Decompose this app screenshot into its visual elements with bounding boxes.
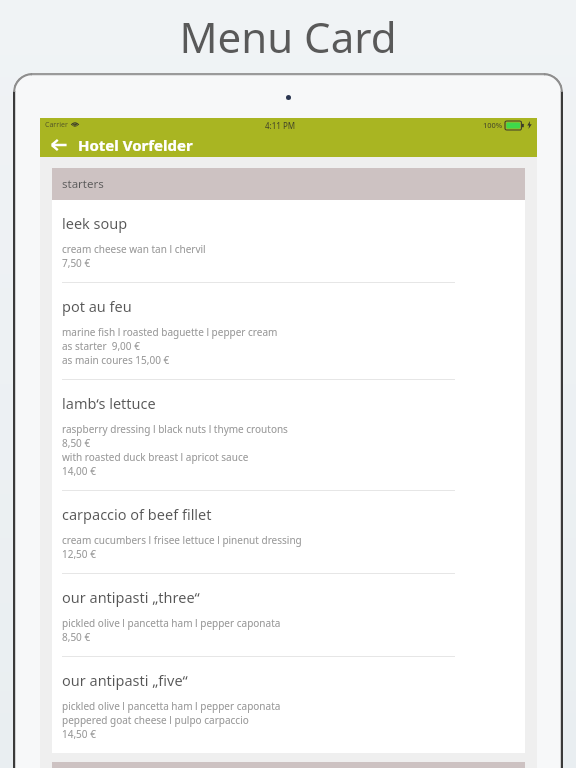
staticText: 100%: [483, 120, 503, 130]
staticText: marine fish l roasted baguette l pepper …: [62, 325, 278, 339]
staticText: 14,00 €: [62, 464, 96, 478]
staticText: Carrier: [45, 120, 68, 130]
button[interactable]: lamb‘s lettuce: [52, 380, 525, 491]
staticText: as starter 9,00 €: [62, 339, 140, 353]
staticText: cream cheese wan tan l chervil: [62, 242, 206, 256]
button[interactable]: pot au feu: [52, 283, 525, 380]
staticText: peppered goat cheese l pulpo carpaccio: [62, 713, 249, 727]
staticText: as main coures 15,00 €: [62, 353, 170, 367]
button[interactable]: Back: [40, 132, 78, 157]
button[interactable]: leek soup: [52, 200, 525, 283]
staticText: leek soup: [62, 213, 128, 233]
staticText: raspberry dressing l black nuts l thyme …: [62, 422, 288, 436]
button[interactable]: our antipasti „five“: [52, 657, 525, 753]
staticText: pot au feu: [62, 296, 132, 316]
staticText: 8,50 €: [62, 436, 91, 450]
staticText: pickled olive l pancetta ham l pepper ca…: [62, 699, 281, 713]
staticText: 8,50 €: [62, 630, 91, 644]
staticText: our antipasti „three“: [62, 587, 200, 607]
staticText: with roasted duck breast l apricot sauce: [62, 450, 249, 464]
staticText: Menu Card: [179, 8, 397, 65]
staticText: cream cucumbers l frisee lettuce l pinen…: [62, 533, 302, 547]
staticText: carpaccio of beef fillet: [62, 504, 212, 524]
staticText: lamb‘s lettuce: [62, 393, 156, 413]
staticText: 7,50 €: [62, 256, 91, 270]
button[interactable]: our antipasti „three“: [52, 574, 525, 657]
staticText: 12,50 €: [62, 547, 96, 561]
staticText: starters: [62, 176, 104, 192]
staticText: 4:11 PM: [265, 120, 296, 131]
staticText: 14,50 €: [62, 727, 96, 741]
staticText: our antipasti „five“: [62, 670, 188, 690]
button[interactable]: carpaccio of beef fillet: [52, 491, 525, 574]
staticText: pickled olive l pancetta ham l pepper ca…: [62, 616, 281, 630]
staticText: Hotel Vorfelder: [78, 135, 193, 155]
button[interactable]: starters: [52, 168, 525, 200]
